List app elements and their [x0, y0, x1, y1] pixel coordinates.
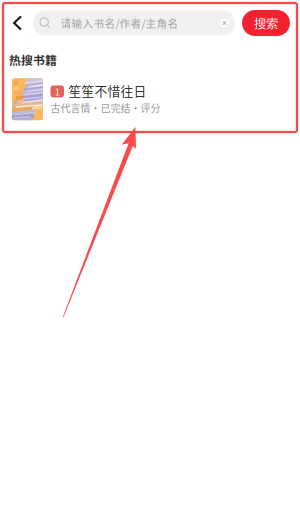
button[interactable]: Back: [12, 10, 33, 36]
staticText: 热搜书籍: [9, 51, 57, 68]
staticText: 笙笙不惜往日: [68, 81, 146, 100]
button[interactable]: 搜索: [242, 10, 290, 36]
button[interactable]: 1: [0, 68, 300, 120]
staticText: 请输入书名/作者/主角名: [60, 15, 178, 31]
staticText: 古代言情•已完结•评分: [50, 101, 160, 115]
staticText: 搜索: [254, 14, 278, 32]
staticText: 1: [55, 85, 60, 98]
